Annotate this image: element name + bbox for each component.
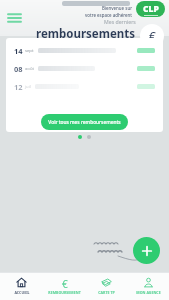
button[interactable]: Page 1 <box>78 135 82 139</box>
staticText: Voir tous mes remboursements <box>48 119 121 126</box>
staticText: € <box>62 277 68 288</box>
button[interactable]: Menu <box>4 8 24 28</box>
staticText: € <box>149 28 156 44</box>
button[interactable]: 08 <box>6 63 163 74</box>
staticText: MON AGENCE <box>136 290 161 295</box>
staticText: 08 <box>14 64 23 74</box>
button[interactable]: CARTE TP <box>85 272 127 300</box>
staticText: CARTE TP <box>98 290 115 295</box>
staticText: août <box>25 66 34 72</box>
button[interactable]: ACCUEIL <box>0 272 43 300</box>
staticText: sept <box>25 48 34 54</box>
button[interactable]: € <box>43 272 85 300</box>
staticText: Mes derniers <box>104 18 136 25</box>
button[interactable]: 14 <box>6 45 163 56</box>
button[interactable]: Voir tous mes remboursements <box>41 114 128 130</box>
button[interactable]: 12 <box>6 81 163 92</box>
staticText: Bienvenue sur <box>101 5 132 11</box>
staticText: 14 <box>14 46 23 56</box>
staticText: 12 <box>14 82 23 92</box>
button[interactable]: Page 2 <box>87 135 91 139</box>
staticText: REMBOURSEMENT <box>48 290 81 295</box>
staticText: CLP <box>143 3 159 15</box>
button[interactable]: MON AGENCE <box>127 272 169 300</box>
button[interactable]: Remboursements <box>140 24 164 48</box>
staticText: juil <box>25 84 31 90</box>
staticText: remboursements <box>36 26 136 42</box>
button[interactable]: Ajouter <box>133 237 160 264</box>
button[interactable]: CLP logo <box>136 1 165 17</box>
staticText: votre espace adhérent <box>84 12 132 18</box>
staticText: ACCUEIL <box>14 290 30 295</box>
